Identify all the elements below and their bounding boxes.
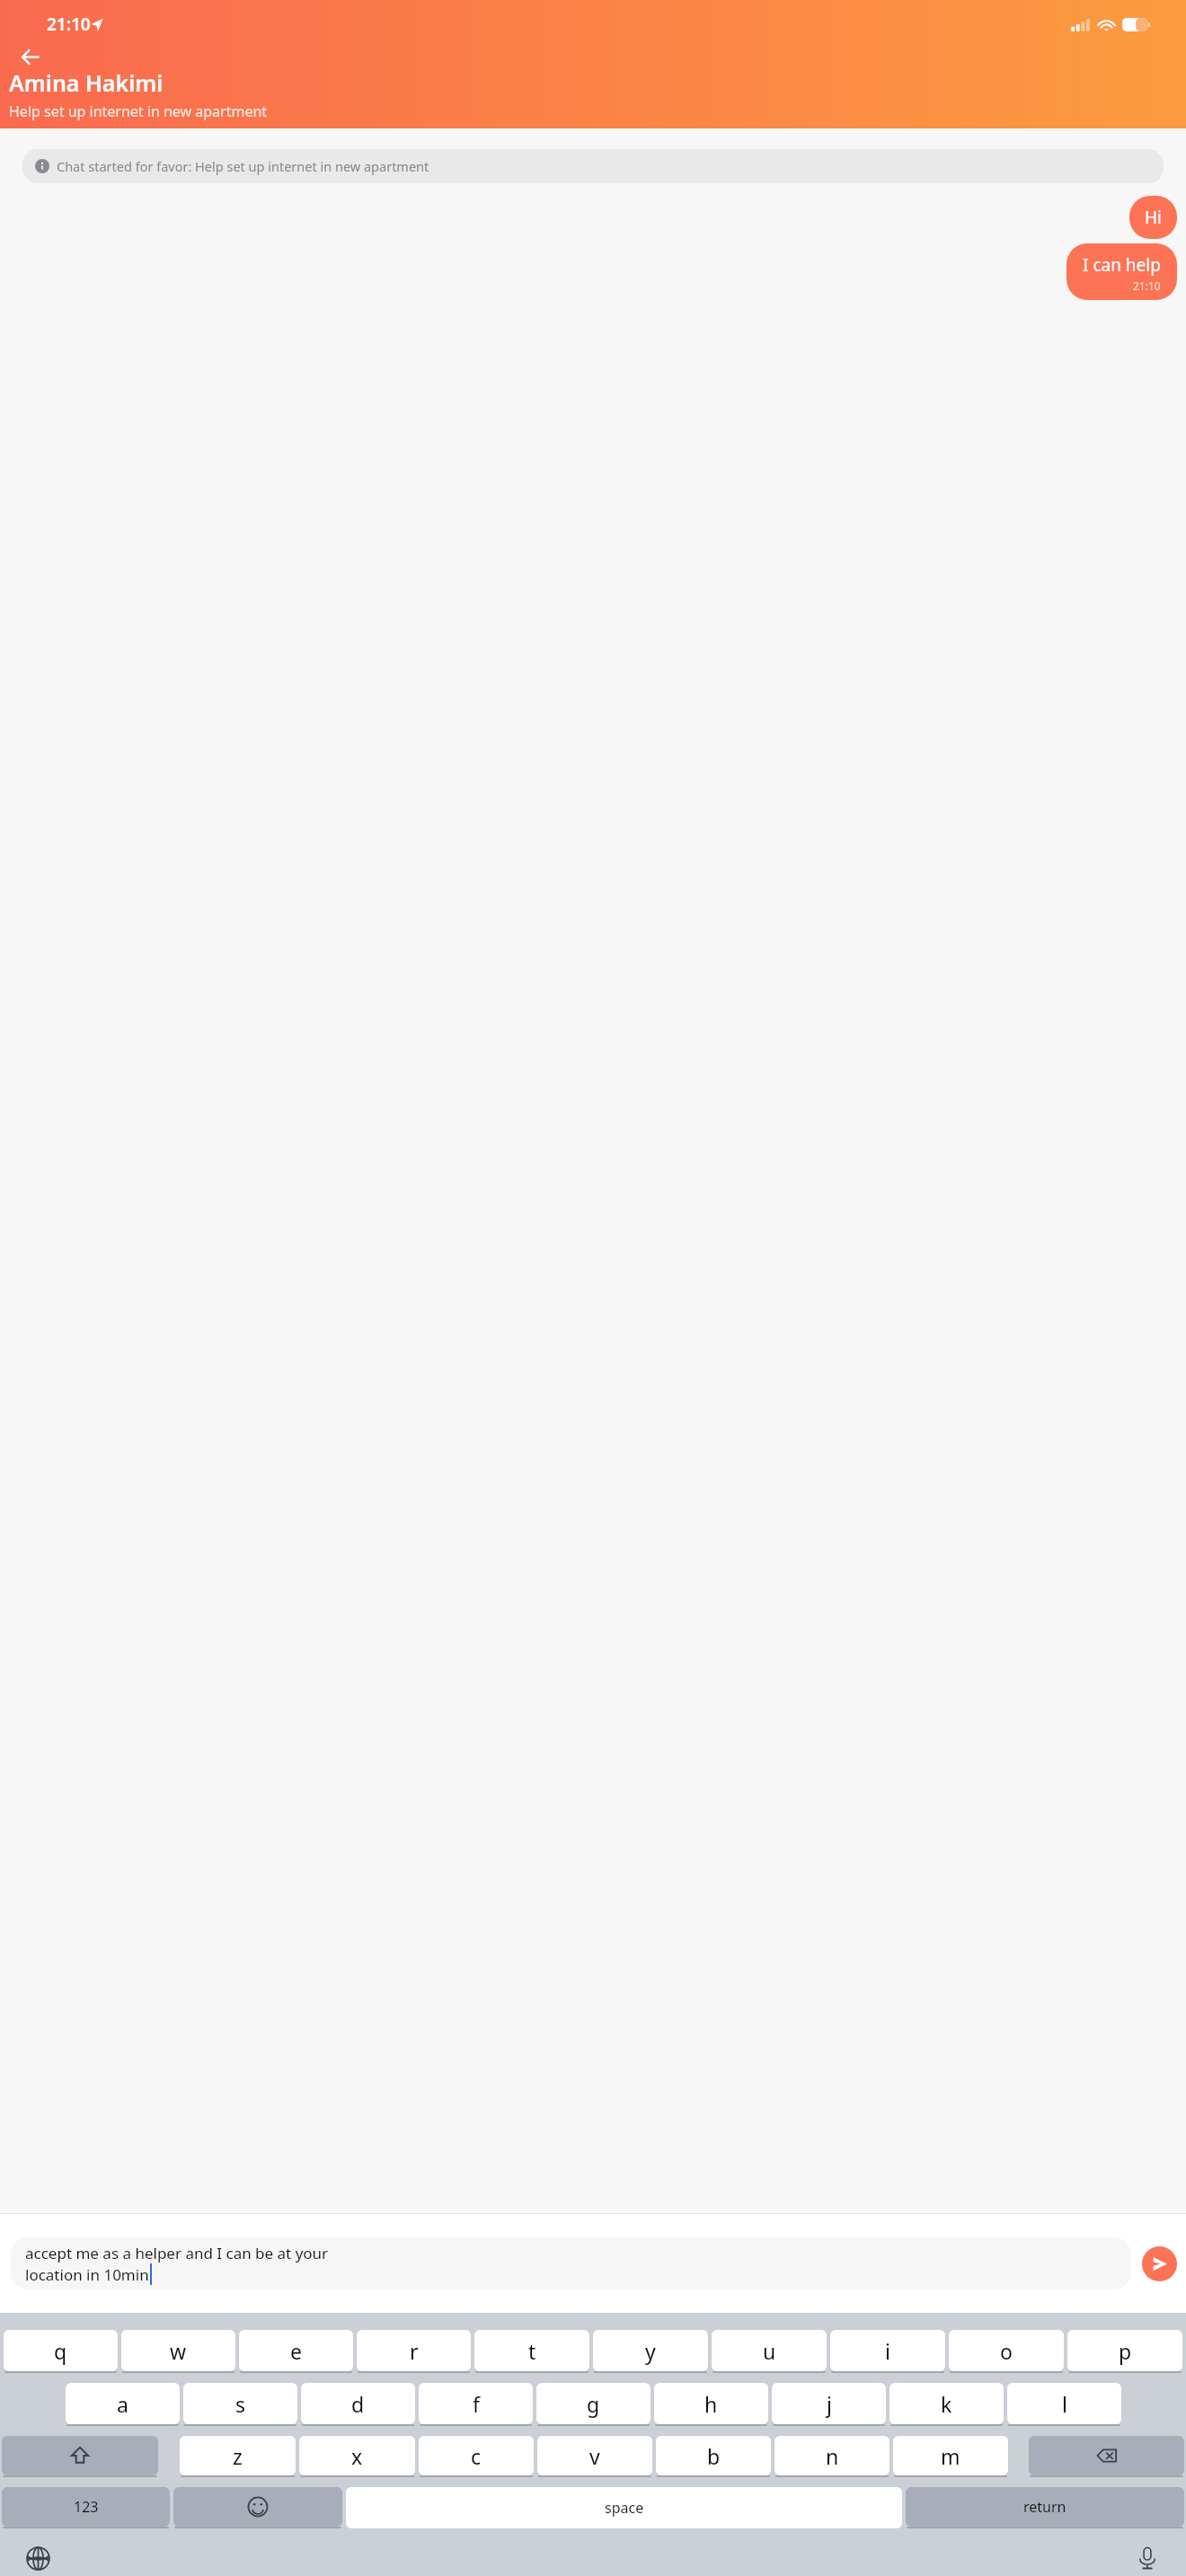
- staticText: s: [235, 2390, 246, 2418]
- button[interactable]: g: [536, 2383, 651, 2424]
- button[interactable]: Dictation: [1132, 2543, 1163, 2573]
- button[interactable]: Back: [13, 40, 47, 74]
- button[interactable]: x: [299, 2436, 415, 2475]
- button[interactable]: h: [654, 2383, 768, 2424]
- button[interactable]: l: [1007, 2383, 1121, 2424]
- staticText: z: [233, 2442, 243, 2470]
- staticText: location in 10min: [25, 2264, 149, 2285]
- staticText: 123: [74, 2497, 99, 2517]
- staticText: return: [1023, 2497, 1067, 2517]
- staticText: i: [885, 2337, 890, 2365]
- staticText: space: [605, 2498, 644, 2518]
- staticText: r: [410, 2337, 419, 2365]
- button[interactable]: Backspace: [1029, 2436, 1184, 2475]
- button[interactable]: y: [593, 2330, 708, 2371]
- button[interactable]: d: [301, 2383, 415, 2424]
- button[interactable]: j: [772, 2383, 886, 2424]
- button[interactable]: k: [889, 2383, 1004, 2424]
- button[interactable]: Emoji: [173, 2487, 342, 2527]
- button[interactable]: space: [346, 2487, 902, 2528]
- staticText: Help set up internet in new apartment: [9, 101, 268, 121]
- staticText: x: [351, 2442, 363, 2470]
- staticText: w: [170, 2337, 187, 2365]
- button[interactable]: q: [4, 2330, 118, 2371]
- staticText: m: [941, 2442, 960, 2470]
- button[interactable]: Shift: [2, 2436, 158, 2475]
- button[interactable]: w: [121, 2330, 235, 2371]
- staticText: g: [587, 2390, 600, 2418]
- staticText: u: [763, 2337, 776, 2365]
- button[interactable]: m: [893, 2436, 1008, 2475]
- staticText: y: [645, 2337, 656, 2365]
- staticText: o: [1000, 2337, 1013, 2365]
- button[interactable]: u: [712, 2330, 827, 2371]
- button[interactable]: r: [357, 2330, 471, 2371]
- staticText: I can help: [1083, 253, 1161, 277]
- staticText: d: [351, 2390, 365, 2418]
- button[interactable]: c: [419, 2436, 534, 2475]
- staticText: v: [589, 2442, 600, 2470]
- staticText: p: [1119, 2337, 1132, 2365]
- button[interactable]: n: [774, 2436, 889, 2475]
- staticText: l: [1062, 2390, 1067, 2418]
- button[interactable]: v: [537, 2436, 652, 2475]
- button[interactable]: f: [419, 2383, 533, 2424]
- button[interactable]: b: [656, 2436, 771, 2475]
- button[interactable]: accept me as a helper and I can be at yo…: [11, 2237, 1131, 2289]
- staticText: a: [117, 2390, 128, 2418]
- button[interactable]: e: [239, 2330, 353, 2371]
- staticText: Chat started for favor: Help set up inte…: [57, 157, 429, 175]
- button[interactable]: a: [66, 2383, 180, 2424]
- staticText: k: [941, 2390, 952, 2418]
- button[interactable]: t: [474, 2330, 589, 2371]
- staticText: b: [707, 2442, 721, 2470]
- staticText: n: [826, 2442, 839, 2470]
- staticText: t: [528, 2337, 536, 2365]
- staticText: 21:10: [47, 13, 91, 36]
- button[interactable]: Send: [1142, 2246, 1177, 2281]
- staticText: h: [704, 2390, 718, 2418]
- staticText: j: [827, 2390, 832, 2418]
- button[interactable]: i: [830, 2330, 945, 2371]
- staticText: 21:10: [1133, 278, 1161, 293]
- staticText: Amina Hakimi: [9, 67, 164, 98]
- staticText: c: [471, 2442, 482, 2470]
- button[interactable]: o: [949, 2330, 1064, 2371]
- button[interactable]: p: [1067, 2330, 1182, 2371]
- staticText: f: [473, 2390, 480, 2418]
- button[interactable]: s: [183, 2383, 297, 2424]
- button[interactable]: return: [906, 2487, 1184, 2527]
- button[interactable]: Hi: [1129, 196, 1177, 239]
- button[interactable]: I can help: [1067, 243, 1177, 300]
- button[interactable]: Change keyboard language: [22, 2543, 53, 2573]
- staticText: e: [290, 2337, 302, 2365]
- button[interactable]: Chat started for favor: Help set up inte…: [22, 149, 1164, 183]
- staticText: Hi: [1145, 206, 1162, 229]
- staticText: accept me as a helper and I can be at yo…: [25, 2243, 329, 2263]
- staticText: q: [54, 2337, 67, 2365]
- button[interactable]: z: [180, 2436, 296, 2475]
- button[interactable]: 123: [2, 2487, 170, 2527]
